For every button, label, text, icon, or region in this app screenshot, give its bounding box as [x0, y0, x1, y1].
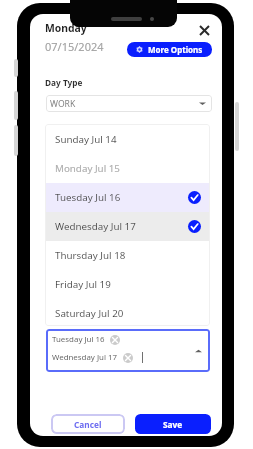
button[interactable]: Tuesday Jul 16 [46, 329, 210, 372]
button[interactable]: Monday Jul 15 [45, 154, 210, 183]
button[interactable]: More Options [127, 42, 212, 57]
staticText: 07/15/2024 [45, 39, 104, 54]
staticText: Friday Jul 19 [55, 278, 111, 291]
button[interactable]: Thursday Jul 18 [45, 241, 210, 270]
staticText: Monday Jul 15 [55, 162, 120, 175]
staticText: Wednesday Jul 17 [55, 220, 136, 233]
button[interactable]: Saturday Jul 20 [45, 299, 210, 326]
staticText: Monday [45, 21, 87, 35]
staticText: Saturday Jul 20 [55, 307, 124, 320]
staticText: Cancel [74, 419, 102, 430]
button[interactable]: Friday Jul 19 [45, 270, 210, 299]
staticText: WORK [50, 98, 76, 110]
staticText: Thursday Jul 18 [55, 249, 126, 262]
staticText: Wednesday Jul 17 [52, 352, 118, 363]
button[interactable]: Wednesday Jul 17 [45, 212, 210, 241]
button[interactable]: Cancel [51, 414, 125, 434]
button[interactable]: WORK [46, 95, 212, 112]
staticText: Day Type [45, 77, 83, 88]
staticText: Save [163, 419, 183, 430]
staticText: Tuesday Jul 16 [52, 334, 105, 345]
button[interactable]: Tuesday Jul 16 [45, 183, 210, 212]
staticText: More Options [148, 44, 203, 55]
button[interactable]: Sunday Jul 14 [45, 125, 210, 154]
staticText: Sunday Jul 14 [55, 133, 117, 146]
button[interactable]: Close [194, 20, 214, 40]
button[interactable]: Save [135, 414, 211, 434]
staticText: Tuesday Jul 16 [55, 191, 121, 204]
